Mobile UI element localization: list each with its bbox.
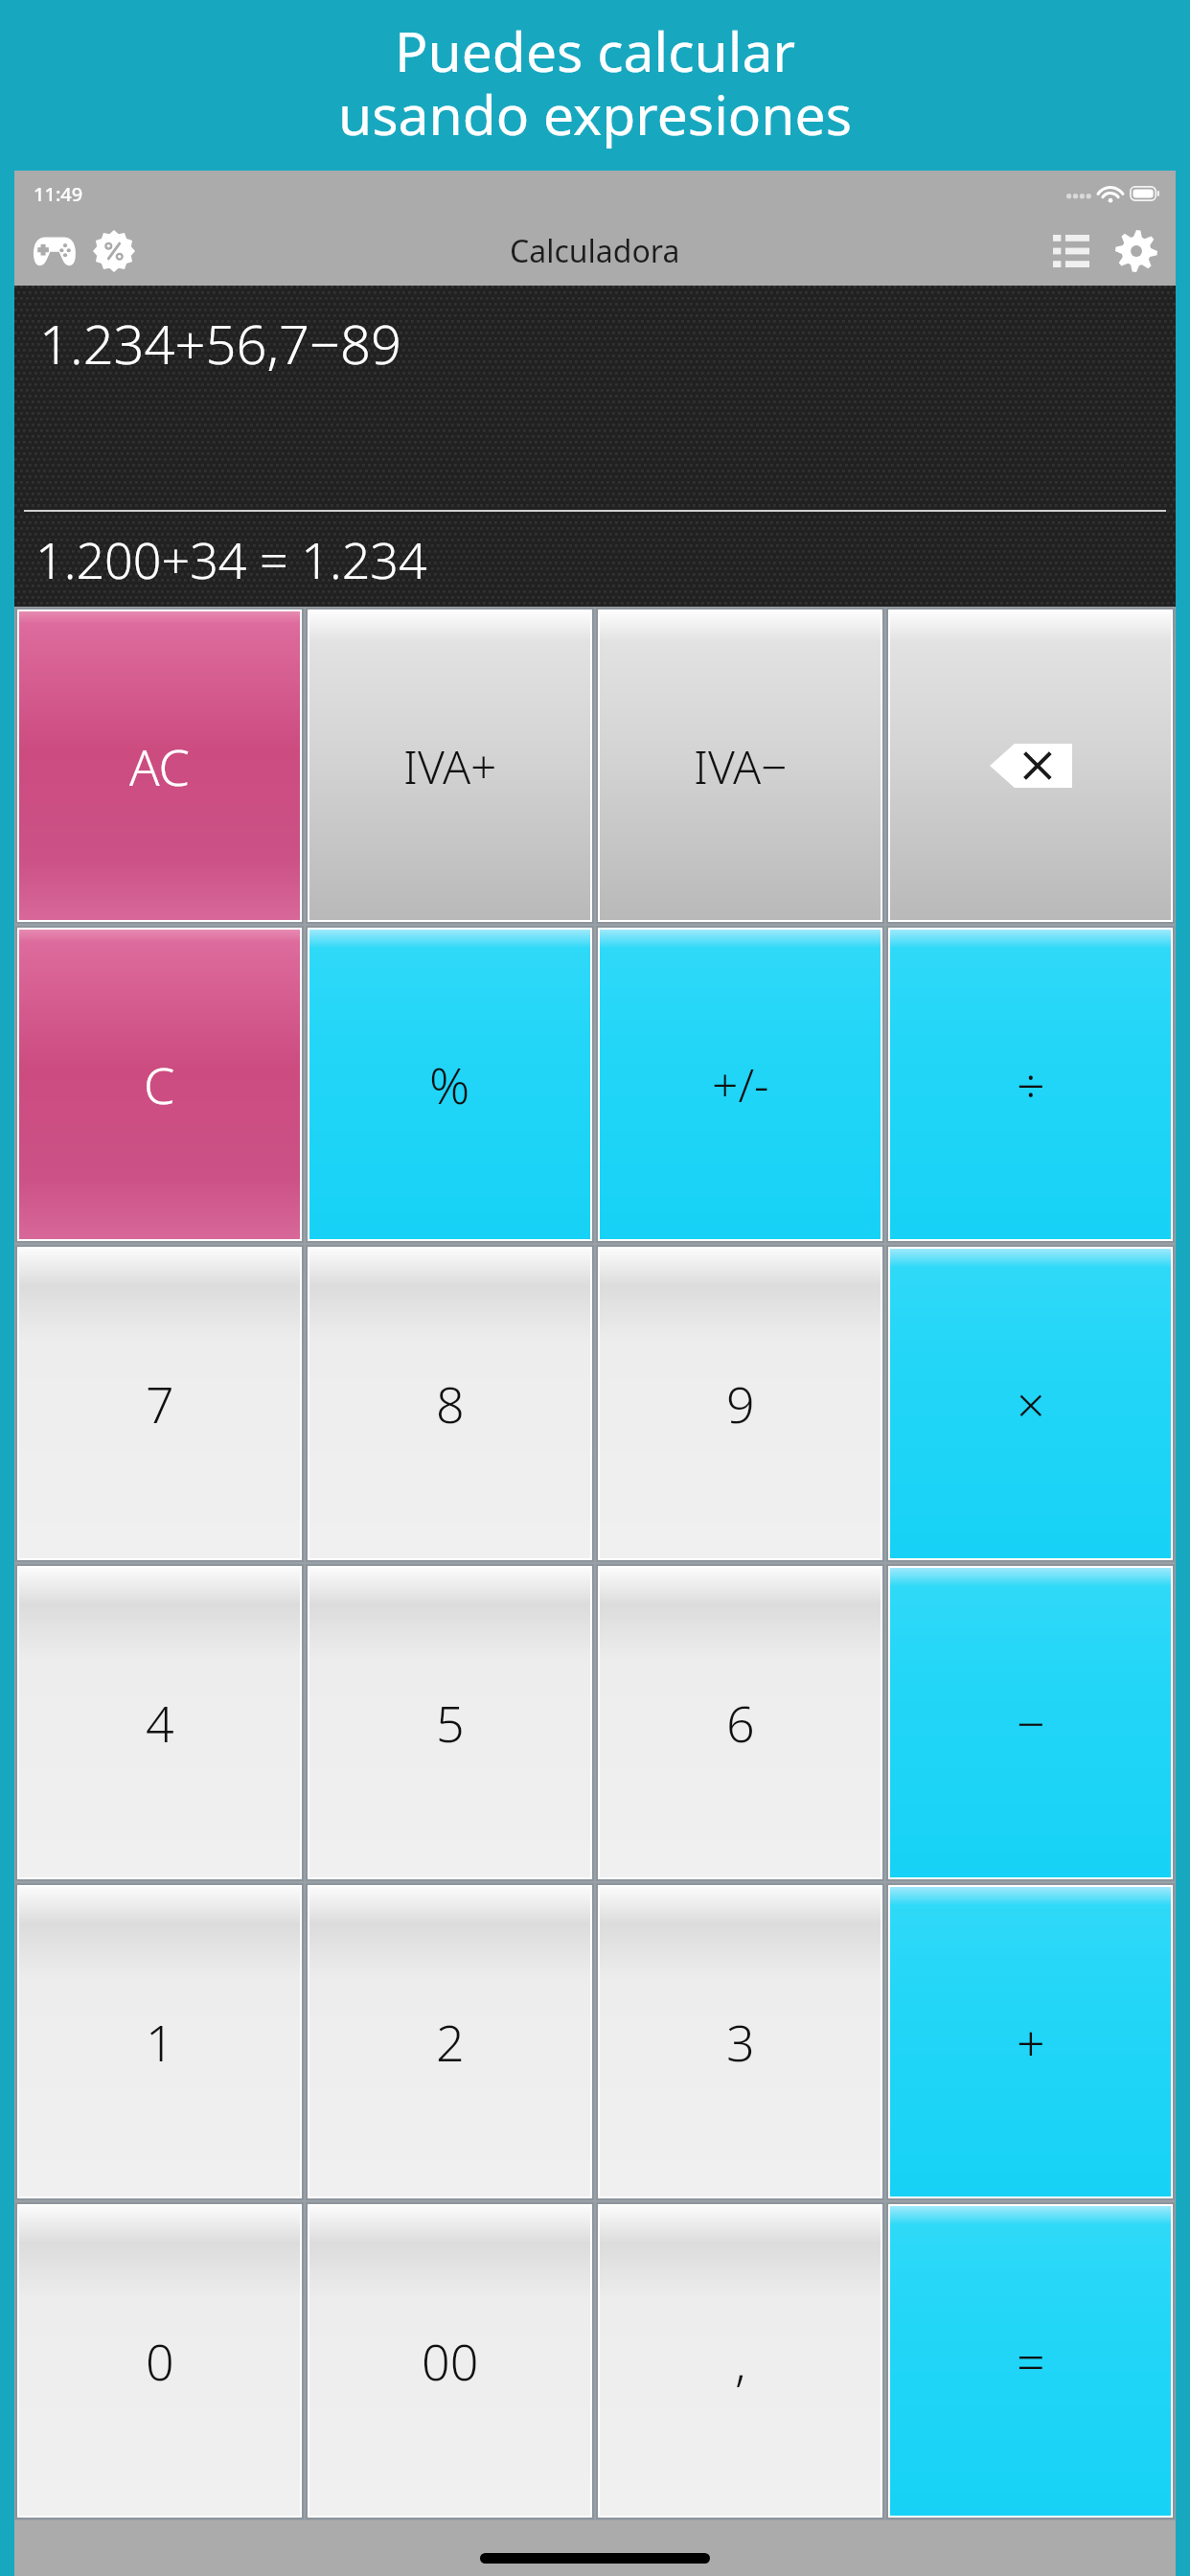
button[interactable]: 6 xyxy=(600,1568,881,1877)
button[interactable]: Ajustes xyxy=(1109,223,1164,279)
button[interactable]: C xyxy=(19,930,300,1239)
staticText: × xyxy=(1017,1369,1045,1437)
button[interactable]: 7 xyxy=(19,1249,300,1558)
staticText: − xyxy=(1017,1689,1045,1757)
button[interactable]: +/- xyxy=(600,930,881,1239)
staticText: 7 xyxy=(146,1369,174,1437)
button[interactable]: = xyxy=(890,2206,1171,2516)
staticText: 2 xyxy=(436,2008,465,2076)
staticText: 0 xyxy=(146,2327,174,2395)
button[interactable]: AC xyxy=(19,611,300,920)
staticText: IVA− xyxy=(694,735,788,797)
staticText: 9 xyxy=(726,1369,755,1437)
button[interactable]: IVA− xyxy=(600,611,881,920)
staticText: 1.200+34 = 1.234 xyxy=(35,525,427,593)
staticText: IVA+ xyxy=(403,735,497,797)
button[interactable]: 9 xyxy=(600,1249,881,1558)
button[interactable]: 1 xyxy=(19,1887,300,2196)
staticText: ÷ xyxy=(1017,1050,1045,1118)
button[interactable]: Porcentaje xyxy=(87,224,141,278)
staticText: 1.234+56,7−89 xyxy=(39,307,401,379)
button[interactable]: 4 xyxy=(19,1568,300,1877)
button[interactable]: 5 xyxy=(309,1568,590,1877)
button[interactable]: % xyxy=(309,930,590,1239)
staticText: 5 xyxy=(436,1689,465,1757)
staticText: = xyxy=(1017,2327,1045,2395)
staticText: 4 xyxy=(146,1689,174,1757)
staticText: 6 xyxy=(726,1689,755,1757)
button[interactable]: IVA+ xyxy=(309,611,590,920)
button[interactable]: Borrar xyxy=(890,611,1171,920)
button[interactable]: 2 xyxy=(309,1887,590,2196)
button[interactable]: + xyxy=(890,1887,1171,2196)
button[interactable]: Juegos xyxy=(28,224,81,278)
staticText: 1 xyxy=(146,2008,174,2076)
button[interactable]: 3 xyxy=(600,1887,881,2196)
button[interactable]: 8 xyxy=(309,1249,590,1558)
staticText: % xyxy=(429,1050,470,1118)
button[interactable]: − xyxy=(890,1568,1171,1877)
button[interactable]: ÷ xyxy=(890,930,1171,1239)
staticText: Calculadora xyxy=(510,230,680,272)
button[interactable]: 0 xyxy=(19,2206,300,2516)
button[interactable]: , xyxy=(600,2206,881,2516)
staticText: + xyxy=(1017,2008,1045,2076)
staticText: C xyxy=(144,1050,175,1118)
staticText: AC xyxy=(129,732,190,800)
staticText: 00 xyxy=(422,2327,479,2395)
button[interactable]: × xyxy=(890,1249,1171,1558)
staticText: +/- xyxy=(712,1053,769,1115)
button[interactable]: 00 xyxy=(309,2206,590,2516)
staticText: 11:49 xyxy=(34,181,83,207)
staticText: 3 xyxy=(726,2008,755,2076)
staticText: 8 xyxy=(436,1369,465,1437)
staticText: , xyxy=(735,2327,746,2395)
button[interactable]: Historial xyxy=(1043,223,1099,279)
staticText: Puedes calcular usando expresiones xyxy=(6,13,1184,151)
